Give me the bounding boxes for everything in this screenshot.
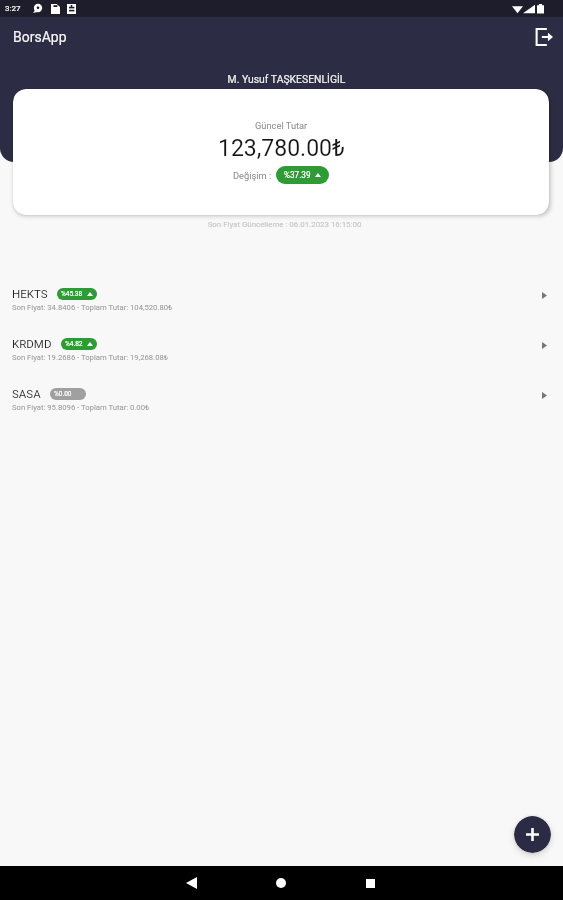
button[interactable]: KRDMD bbox=[0, 326, 563, 376]
staticText: 3:27 bbox=[5, 4, 21, 13]
staticText: %4.82 bbox=[65, 340, 83, 348]
staticText: KRDMD bbox=[12, 337, 52, 350]
button[interactable]: SASA bbox=[0, 376, 563, 426]
staticText: %37.39 bbox=[284, 170, 311, 180]
staticText: Son Fiyat: 19.2686 - Toplam Tutar: 19,26… bbox=[12, 353, 169, 362]
button[interactable]: Home bbox=[261, 866, 301, 900]
staticText: M. Yusuf TAŞKESENLİGİL bbox=[5, 73, 563, 85]
button[interactable]: Back bbox=[171, 866, 211, 900]
staticText: 123,780.00₺ bbox=[218, 135, 345, 162]
button[interactable]: Add bbox=[514, 816, 551, 853]
button[interactable]: Logout bbox=[527, 20, 561, 54]
staticText: %45.38 bbox=[61, 290, 83, 298]
staticText: Güncel Tutar bbox=[255, 120, 308, 131]
staticText: Son Fiyat: 95.8096 - Toplam Tutar: 0.00₺ bbox=[12, 403, 150, 412]
staticText: HEKTS bbox=[12, 287, 48, 300]
staticText: %0.00 bbox=[54, 390, 72, 398]
staticText: Değişim : bbox=[233, 170, 272, 181]
staticText: Son Fiyat Güncelleme : 06.01.2023 16:15:… bbox=[3, 220, 563, 229]
staticText: Son Fiyat: 34.8406 - Toplam Tutar: 104,5… bbox=[12, 303, 173, 312]
button[interactable]: Recents bbox=[350, 866, 390, 900]
button[interactable]: HEKTS bbox=[0, 276, 563, 326]
staticText: BorsApp bbox=[13, 29, 67, 45]
staticText: SASA bbox=[12, 387, 41, 400]
